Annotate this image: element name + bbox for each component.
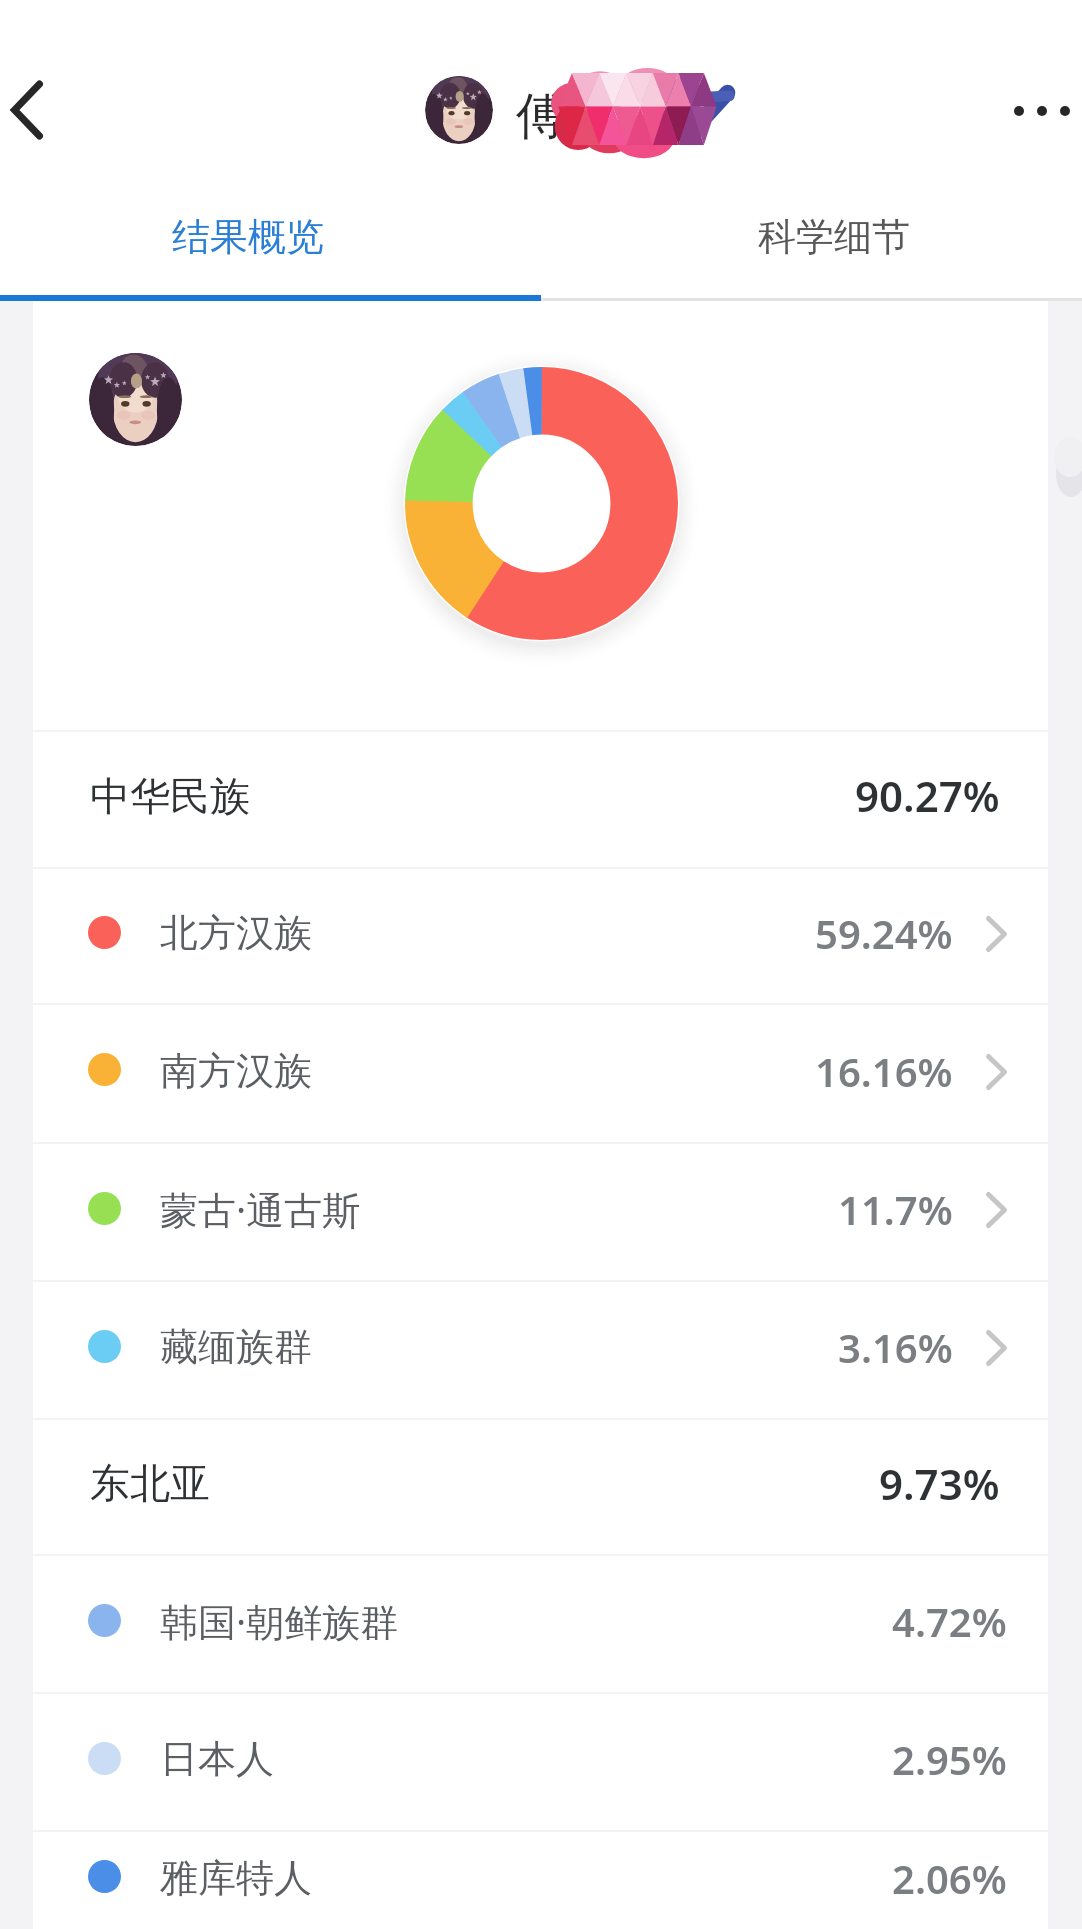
staticText: 11.7% — [838, 1182, 953, 1236]
button[interactable]: 北方汉族 — [33, 869, 1048, 1003]
staticText: 90.27% — [855, 767, 1000, 824]
staticText: 雅库特人 — [160, 1854, 312, 1902]
button[interactable]: 科学细节 — [541, 187, 1082, 301]
staticText: 傅 — [516, 85, 566, 148]
staticText: 东北亚 — [90, 1458, 210, 1508]
staticText: 南方汉族 — [160, 1047, 312, 1095]
button[interactable]: Back — [0, 62, 96, 158]
staticText: 4.72% — [892, 1594, 1007, 1648]
staticText: 59.24% — [815, 906, 953, 960]
staticText: 中华民族 — [90, 771, 250, 821]
button[interactable]: 结果概览 — [0, 187, 541, 301]
staticText: 9.73% — [879, 1455, 1000, 1512]
staticText: 16.16% — [815, 1044, 953, 1098]
staticText: 3.16% — [838, 1320, 953, 1374]
staticText: 2.95% — [892, 1732, 1007, 1786]
button[interactable]: 东北亚 — [33, 1420, 1048, 1554]
staticText: 2.06% — [892, 1851, 1007, 1905]
button[interactable]: 雅库特人 — [33, 1832, 1048, 1929]
button[interactable]: 韩国·朝鲜族群 — [33, 1556, 1048, 1692]
button[interactable]: 日本人 — [33, 1694, 1048, 1830]
staticText: 结果概览 — [172, 213, 324, 261]
staticText: 藏缅族群 — [160, 1323, 312, 1371]
button[interactable]: More options — [994, 63, 1082, 159]
staticText: 日本人 — [160, 1735, 274, 1783]
staticText: 蒙古·通古斯 — [160, 1183, 361, 1235]
staticText: 韩国·朝鲜族群 — [160, 1595, 399, 1647]
staticText: 北方汉族 — [160, 909, 312, 957]
button[interactable]: 藏缅族群 — [33, 1282, 1048, 1418]
button[interactable]: 蒙古·通古斯 — [33, 1144, 1048, 1280]
button[interactable]: 南方汉族 — [33, 1005, 1048, 1142]
staticText: 科学细节 — [758, 213, 910, 261]
button[interactable]: 傅 — [425, 60, 735, 160]
button[interactable]: 中华民族 — [33, 732, 1048, 867]
